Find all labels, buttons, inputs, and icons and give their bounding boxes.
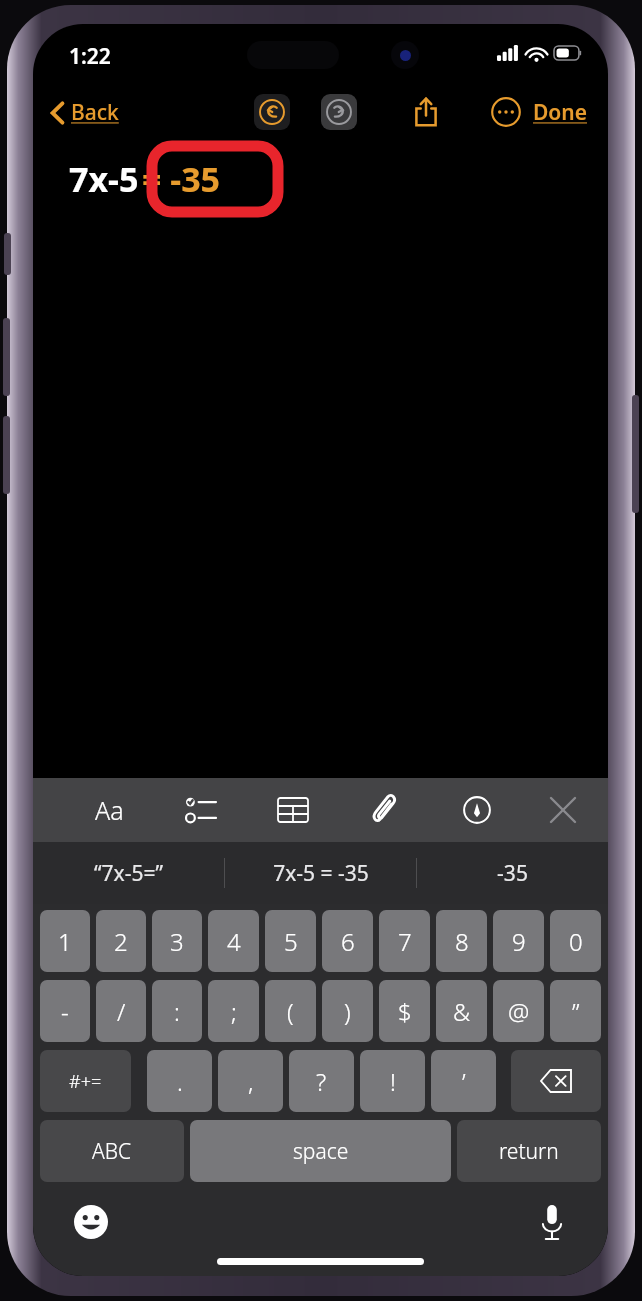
staticText: - <box>61 995 69 1028</box>
staticText: ; <box>231 995 237 1028</box>
staticText: return <box>499 1137 559 1166</box>
button[interactable]: Emoji <box>69 1200 113 1244</box>
staticText: 1 <box>58 925 72 958</box>
staticText: : <box>174 995 180 1028</box>
staticText: 3 <box>170 925 184 958</box>
button[interactable]: Table <box>267 784 319 836</box>
button[interactable]: ’ <box>431 1050 496 1112</box>
button[interactable]: ( <box>265 980 316 1042</box>
staticText: Aa <box>95 793 124 827</box>
staticText: 8 <box>455 925 469 958</box>
button[interactable]: return <box>457 1120 601 1182</box>
staticText: @ <box>508 995 530 1028</box>
button[interactable]: . <box>147 1050 212 1112</box>
button[interactable]: 3 <box>152 910 202 972</box>
button[interactable]: 5 <box>265 910 316 972</box>
button[interactable]: Close keyboard <box>537 784 589 836</box>
staticText: ( <box>287 995 294 1028</box>
button[interactable]: 0 <box>550 910 601 972</box>
staticText: Done <box>533 98 588 127</box>
staticText: 7 <box>398 925 412 958</box>
staticText: ) <box>344 995 351 1028</box>
button[interactable]: , <box>218 1050 283 1112</box>
button[interactable]: 2 <box>96 910 146 972</box>
button[interactable]: 6 <box>322 910 373 972</box>
button[interactable]: 4 <box>208 910 259 972</box>
button[interactable]: ! <box>360 1050 425 1112</box>
button[interactable]: 7x-5 = -35 <box>225 842 416 904</box>
button[interactable]: / <box>96 980 146 1042</box>
staticText: 2 <box>114 925 128 958</box>
button[interactable]: -35 <box>417 842 608 904</box>
button[interactable]: ABC <box>40 1120 184 1182</box>
staticText: -35 <box>497 859 528 888</box>
button[interactable]: 8 <box>436 910 487 972</box>
staticText: & <box>453 995 471 1028</box>
staticText: 7x-5 <box>69 156 139 202</box>
staticText: 7x-5 = -35 <box>273 859 369 888</box>
button[interactable]: ” <box>550 980 601 1042</box>
button[interactable]: space <box>190 1120 451 1182</box>
button[interactable]: ? <box>289 1050 354 1112</box>
button[interactable]: Dictate <box>530 1200 574 1244</box>
staticText: #+= <box>69 1069 102 1094</box>
staticText: “7x-5=” <box>94 859 163 888</box>
staticText: space <box>293 1137 349 1166</box>
button[interactable]: : <box>152 980 202 1042</box>
button[interactable]: - <box>40 980 90 1042</box>
staticText: ” <box>572 995 580 1028</box>
staticText: 6 <box>341 925 355 958</box>
button[interactable]: 9 <box>493 910 544 972</box>
staticText: 1:22 <box>69 42 111 71</box>
staticText: , <box>248 1065 254 1098</box>
staticText: 0 <box>569 925 583 958</box>
button[interactable]: 7 <box>379 910 430 972</box>
button[interactable]: Back <box>45 94 125 131</box>
button[interactable]: Redo <box>321 94 357 130</box>
button[interactable]: 1 <box>40 910 90 972</box>
staticText: 5 <box>284 925 298 958</box>
staticText: 9 <box>512 925 526 958</box>
button[interactable]: Share <box>403 89 449 135</box>
staticText: Back <box>71 98 119 127</box>
button[interactable]: & <box>436 980 487 1042</box>
staticText: ? <box>316 1065 327 1098</box>
staticText: 4 <box>227 925 241 958</box>
button[interactable]: Checklist <box>175 784 227 836</box>
button[interactable]: $ <box>379 980 430 1042</box>
button[interactable]: ) <box>322 980 373 1042</box>
button[interactable]: More options <box>483 89 529 135</box>
staticText: ! <box>390 1065 396 1098</box>
button[interactable]: Attach <box>359 784 411 836</box>
button[interactable]: #+= <box>40 1050 131 1112</box>
button[interactable]: ; <box>208 980 259 1042</box>
button[interactable]: Delete <box>511 1050 601 1112</box>
button[interactable]: Done <box>527 94 594 131</box>
button[interactable]: Undo <box>254 94 290 130</box>
staticText: ABC <box>92 1137 132 1166</box>
button[interactable]: “7x-5=” <box>33 842 224 904</box>
staticText: ’ <box>462 1065 466 1098</box>
staticText: / <box>117 995 126 1028</box>
staticText: $ <box>398 995 412 1028</box>
staticText: . <box>177 1065 183 1098</box>
button[interactable]: Text format <box>83 784 135 836</box>
staticText: = -35 <box>142 156 221 202</box>
button[interactable]: @ <box>493 980 544 1042</box>
button[interactable]: Markup <box>451 784 503 836</box>
